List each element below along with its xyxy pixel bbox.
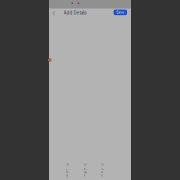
staticText: Plan (84, 168, 87, 177)
staticText: Save (116, 10, 124, 14)
staticText: Log (66, 168, 69, 177)
button[interactable]: You (101, 165, 104, 175)
staticText: You (101, 168, 104, 177)
staticText: Add Details (64, 10, 87, 15)
button[interactable]: Plan (83, 165, 87, 175)
button[interactable]: Save (114, 10, 127, 15)
button[interactable]: Log (66, 165, 70, 175)
button[interactable]: Back (51, 9, 58, 17)
